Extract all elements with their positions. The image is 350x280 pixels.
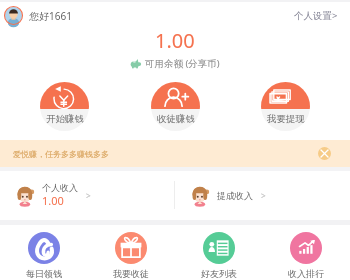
staticText: 收入排行 xyxy=(288,268,324,279)
button[interactable]: 收入排行 xyxy=(271,226,341,279)
staticText: 我要提现 xyxy=(267,113,305,125)
staticText: 爱悦赚，任务多多赚钱多多 xyxy=(13,149,109,159)
button[interactable]: 个人收入 xyxy=(0,171,175,219)
button[interactable]: 开始赚钱 xyxy=(40,82,89,131)
button[interactable]: 好友列表 xyxy=(184,226,254,279)
staticText: 个人设置> xyxy=(294,9,338,22)
button[interactable]: 个人设置> xyxy=(294,9,338,22)
button[interactable]: 我要提现 xyxy=(261,82,310,131)
staticText: 好友列表 xyxy=(201,268,237,279)
staticText: 1.00 xyxy=(42,193,64,208)
staticText: 收徒赚钱 xyxy=(157,113,195,125)
staticText: > xyxy=(86,190,91,201)
staticText: 提成收入 xyxy=(217,190,253,201)
staticText: 每日领钱 xyxy=(26,268,62,279)
staticText: 我要收徒 xyxy=(113,268,149,279)
staticText: 1.00 xyxy=(155,27,195,54)
button[interactable]: 我要收徒 xyxy=(96,226,166,279)
staticText: 可用余额 (分享币) xyxy=(145,57,220,70)
staticText: > xyxy=(261,190,266,201)
button[interactable]: 关闭 xyxy=(318,147,331,160)
staticText: 您好1661 xyxy=(29,9,72,23)
button[interactable]: 每日领钱 xyxy=(9,226,79,279)
button[interactable]: 收徒赚钱 xyxy=(151,82,200,131)
button[interactable]: 提成收入 xyxy=(175,171,350,219)
staticText: 开始赚钱 xyxy=(46,113,84,125)
staticText: 个人收入 xyxy=(42,182,78,193)
button[interactable]: 您好1661 xyxy=(4,6,72,25)
